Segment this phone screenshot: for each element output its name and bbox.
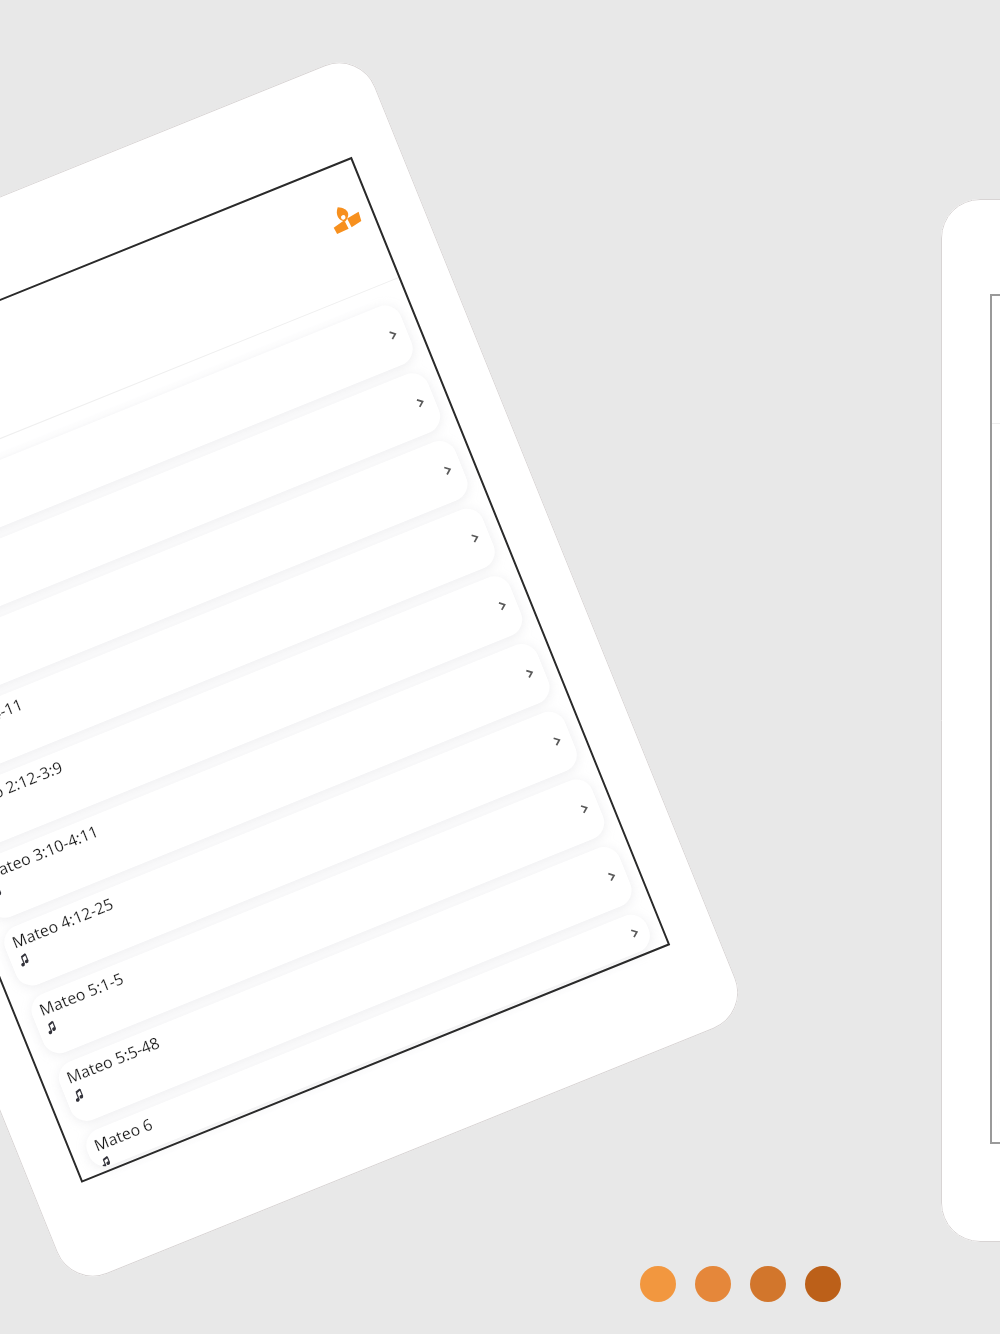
button[interactable]: Mateo 5:5-48 [53,842,637,1126]
button[interactable]: Mateo 2:4-11 [0,503,500,788]
staticText: Mateo 5:5-48 [63,1031,163,1089]
staticText: Mateo 2:4-11 [0,693,26,750]
button[interactable]: Mateo 1:1-17 [0,300,418,585]
staticText: Mateo 2:12-3:9 [0,756,66,818]
button[interactable]: Mateo 5:1-5 [26,774,610,1059]
button[interactable]: Mateo 2:12-3:9 [0,571,528,856]
button[interactable]: Mateo 4:12-25 [0,706,582,991]
staticText: Mateo 4:12-25 [9,892,117,953]
button[interactable]: Mateo 1:18-25 [0,368,446,653]
button[interactable]: Mateo 2:1-12 [0,435,473,720]
button[interactable]: Mateo 3:10-4:11 [0,639,555,923]
button[interactable]: Mateo 6 [81,909,655,1172]
staticText: Mateo 3:10-4:11 [0,820,102,886]
staticText: Mateo 6 [91,1113,156,1156]
button[interactable]: Open book menu [317,189,372,244]
staticText: Mateo 5:1-5 [36,967,128,1021]
